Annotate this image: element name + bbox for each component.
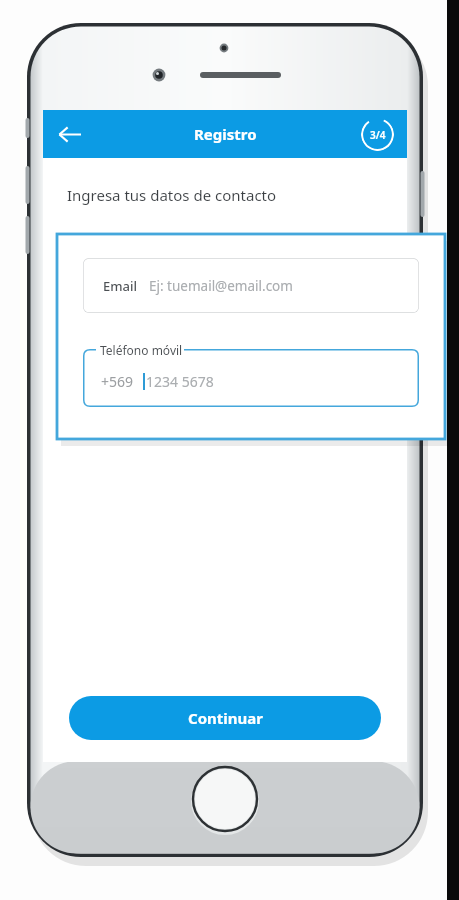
staticText: +569 <box>101 372 134 391</box>
button[interactable]: Email <box>83 258 419 313</box>
staticText: Continuar <box>188 708 263 728</box>
staticText: Email <box>103 277 138 295</box>
button[interactable]: Teléfono móvil <box>83 349 419 407</box>
staticText: 1234 5678 <box>146 372 214 391</box>
staticText: Teléfono móvil <box>100 342 183 358</box>
button[interactable]: Back <box>49 114 89 154</box>
staticText: Ingresa tus datos de contacto <box>67 185 277 205</box>
button[interactable]: Continuar <box>69 696 381 740</box>
staticText: Registro <box>194 124 257 144</box>
staticText: 3/4 <box>370 128 386 142</box>
staticText: Ej: tuemail@email.com <box>149 277 293 295</box>
button[interactable]: Paso 3 de 4 <box>361 118 394 151</box>
